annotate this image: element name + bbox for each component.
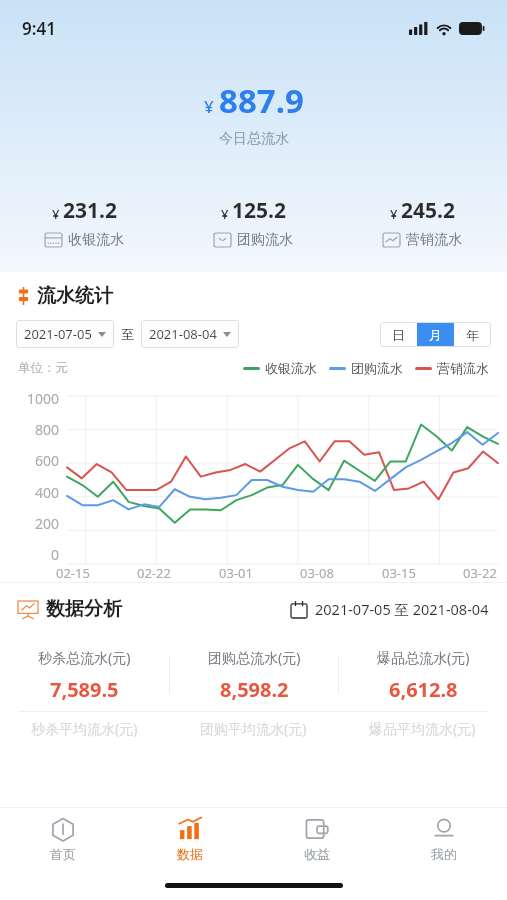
- staticText: 200: [35, 514, 60, 533]
- staticText: 0: [51, 545, 60, 564]
- staticText: 2021-07-05 至 2021-08-04: [315, 599, 489, 619]
- staticText: 收银流水: [68, 231, 124, 249]
- staticText: 至: [121, 326, 134, 342]
- button[interactable]: 爆品总流水(元): [339, 648, 507, 703]
- staticText: 收银流水: [265, 360, 317, 376]
- staticText: 营销流水: [406, 231, 462, 249]
- staticText: 营销流水: [437, 360, 489, 376]
- staticText: 单位：元: [18, 360, 68, 376]
- button[interactable]: 2021-08-04: [141, 320, 239, 348]
- staticText: 流水统计: [37, 284, 113, 308]
- button[interactable]: 秒杀总流水(元): [0, 648, 169, 703]
- staticText: 年: [466, 327, 479, 343]
- staticText: 秒杀总流水(元): [38, 648, 131, 667]
- button[interactable]: ¥: [338, 196, 507, 249]
- staticText: 400: [35, 483, 60, 502]
- staticText: 数据分析: [46, 597, 122, 621]
- staticText: 02-22: [137, 564, 171, 582]
- staticText: 团购流水: [237, 231, 293, 249]
- button[interactable]: 首页: [0, 808, 126, 870]
- staticText: 首页: [50, 846, 76, 862]
- staticText: 245.2: [401, 196, 455, 225]
- button[interactable]: 日: [380, 322, 417, 347]
- staticText: 日: [392, 327, 405, 343]
- staticText: 03-08: [300, 564, 334, 582]
- staticText: 800: [35, 420, 60, 439]
- staticText: 600: [35, 451, 60, 470]
- staticText: 月: [429, 327, 442, 343]
- staticText: 9:41: [22, 17, 56, 40]
- staticText: 我的: [431, 846, 457, 862]
- button[interactable]: 月: [417, 322, 454, 347]
- staticText: 团购总流水(元): [208, 648, 301, 667]
- staticText: ¥: [390, 205, 401, 223]
- staticText: 02-15: [56, 564, 90, 582]
- staticText: 团购平均流水(元): [200, 719, 307, 737]
- staticText: 887.9: [219, 78, 304, 123]
- staticText: 6,612.8: [389, 676, 458, 703]
- staticText: 今日总流水: [219, 130, 289, 148]
- staticText: 数据: [177, 846, 203, 862]
- staticText: 1000: [27, 389, 60, 408]
- staticText: 7,589.5: [50, 676, 119, 703]
- staticText: 125.2: [232, 196, 286, 225]
- button[interactable]: 数据: [126, 808, 253, 870]
- staticText: 2021-08-04: [149, 325, 217, 343]
- staticText: ¥: [221, 205, 232, 223]
- button[interactable]: ¥: [0, 196, 169, 249]
- button[interactable]: 2021-07-05: [16, 320, 114, 348]
- staticText: 231.2: [63, 196, 117, 225]
- staticText: 收益: [304, 846, 330, 862]
- staticText: 03-15: [382, 564, 416, 582]
- button[interactable]: 年: [454, 322, 491, 347]
- button[interactable]: 2021-07-05 至 2021-08-04: [291, 599, 489, 619]
- staticText: 8,598.2: [220, 676, 289, 703]
- staticText: 爆品总流水(元): [377, 648, 470, 667]
- staticText: 秒杀平均流水(元): [31, 719, 138, 737]
- staticText: 03-01: [219, 564, 253, 582]
- staticText: ¥: [204, 95, 219, 118]
- staticText: ¥: [52, 205, 63, 223]
- staticText: 03-22: [463, 564, 497, 582]
- button[interactable]: 团购总流水(元): [170, 648, 338, 703]
- button[interactable]: 收益: [253, 808, 380, 870]
- staticText: 2021-07-05: [24, 325, 92, 343]
- staticText: 爆品平均流水(元): [369, 719, 476, 737]
- button[interactable]: 我的: [380, 808, 507, 870]
- button[interactable]: ¥: [169, 196, 338, 249]
- staticText: 团购流水: [351, 360, 403, 376]
